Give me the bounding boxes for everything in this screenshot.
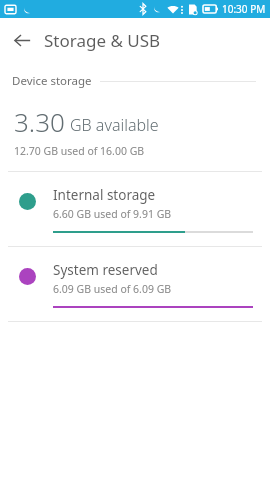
staticText: GB available <box>70 114 159 136</box>
staticText: System reserved <box>53 261 158 279</box>
button[interactable]: Internal storage <box>0 172 270 246</box>
staticText: 10:30 PM <box>222 2 266 16</box>
staticText: Device storage <box>12 73 92 89</box>
staticText: 6.09 GB used of 6.09 GB <box>53 282 172 296</box>
button[interactable]: Back <box>5 23 39 57</box>
staticText: 6.60 GB used of 9.91 GB <box>53 207 172 221</box>
staticText: Internal storage <box>53 186 156 204</box>
staticText: 3.30 <box>14 104 65 139</box>
staticText: Storage & USB <box>44 29 161 52</box>
staticText: 12.70 GB used of 16.00 GB <box>14 144 145 158</box>
button[interactable]: System reserved <box>0 247 270 321</box>
